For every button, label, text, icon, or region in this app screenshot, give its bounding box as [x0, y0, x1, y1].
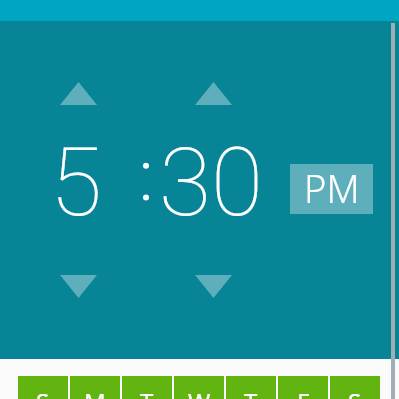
- staticText: S: [348, 385, 362, 399]
- button[interactable]: Increase hour: [60, 82, 97, 105]
- staticText: 5: [50, 127, 102, 237]
- button[interactable]: M: [70, 376, 120, 399]
- button[interactable]: 30: [155, 127, 267, 237]
- staticText: F: [297, 385, 310, 399]
- staticText: S: [36, 385, 50, 399]
- staticText: M: [84, 385, 106, 399]
- staticText: PM: [304, 162, 360, 212]
- staticText: T: [244, 385, 258, 399]
- button[interactable]: T: [122, 376, 172, 399]
- button[interactable]: W: [174, 376, 224, 399]
- button[interactable]: PM: [290, 164, 373, 214]
- button[interactable]: Increase minute: [195, 82, 232, 105]
- button[interactable]: 5: [45, 127, 107, 237]
- button[interactable]: S: [330, 376, 380, 399]
- button[interactable]: Decrease minute: [195, 275, 232, 298]
- staticText: 30: [159, 127, 263, 237]
- button[interactable]: T: [226, 376, 276, 399]
- staticText: T: [140, 385, 154, 399]
- staticText: W: [188, 385, 211, 399]
- button[interactable]: F: [278, 376, 328, 399]
- button[interactable]: S: [18, 376, 68, 399]
- button[interactable]: Decrease hour: [60, 275, 97, 298]
